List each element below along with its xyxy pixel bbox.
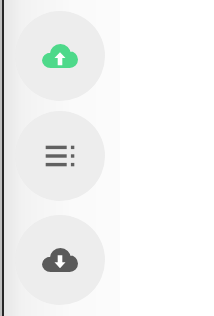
button[interactable]: Upload — [15, 11, 105, 101]
button[interactable]: Download — [15, 215, 105, 305]
button[interactable]: List — [15, 111, 105, 201]
